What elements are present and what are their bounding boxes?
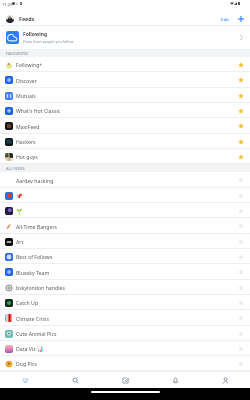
button[interactable]: Bluesky Team bbox=[0, 264, 250, 280]
button[interactable]: bskylondon handles bbox=[0, 280, 250, 295]
button[interactable]: Add feed bbox=[235, 13, 247, 25]
button[interactable]: Art bbox=[0, 234, 250, 249]
staticText: Bluesky Team bbox=[16, 269, 235, 276]
staticText: Following+ bbox=[16, 61, 235, 68]
staticText: Cute Animal Pics bbox=[16, 330, 235, 337]
button[interactable]: 🌱 bbox=[0, 203, 250, 218]
button[interactable]: Remove from favourites bbox=[235, 120, 247, 132]
button[interactable]: All-Time Bangers bbox=[0, 218, 250, 234]
staticText: 11:23 bbox=[2, 2, 13, 7]
button[interactable]: Remove from favourites bbox=[235, 105, 247, 117]
button[interactable]: Add to favourites bbox=[235, 251, 247, 263]
staticText: Posts from people you follow bbox=[23, 39, 74, 44]
button[interactable]: Hackers bbox=[0, 134, 250, 149]
button[interactable]: 📌 bbox=[0, 188, 250, 203]
staticText: Discover bbox=[16, 77, 235, 84]
staticText: Dog Pics bbox=[16, 360, 235, 367]
button[interactable]: Profile bbox=[200, 372, 250, 388]
staticText: Mutuals bbox=[16, 92, 235, 99]
button[interactable]: Add to favourites bbox=[235, 266, 247, 278]
button[interactable]: Cute Animal Pics bbox=[0, 326, 250, 341]
button[interactable]: Remove from favourites bbox=[235, 151, 247, 163]
button[interactable]: Add to favourites bbox=[235, 190, 247, 202]
button[interactable]: Add to favourites bbox=[235, 343, 247, 355]
button[interactable]: Best of Follows bbox=[0, 249, 250, 264]
staticText: MaxiFeed bbox=[16, 123, 235, 130]
staticText: All-Time Bangers bbox=[16, 223, 235, 230]
button[interactable]: Remove from favourites bbox=[235, 59, 247, 71]
staticText: Following bbox=[23, 31, 48, 38]
button[interactable]: Climate Crisis bbox=[0, 310, 250, 326]
button[interactable]: Add to favourites bbox=[235, 282, 247, 294]
button[interactable]: Open profile menu bbox=[6, 15, 14, 23]
button[interactable]: Add to favourites bbox=[235, 358, 247, 370]
button[interactable]: Add to favourites bbox=[235, 312, 247, 324]
staticText: bskylondon handles bbox=[16, 284, 235, 291]
button[interactable]: Add to favourites bbox=[235, 220, 247, 232]
button[interactable]: New post bbox=[100, 372, 150, 388]
button[interactable]: Hot guys bbox=[0, 149, 250, 164]
button[interactable]: Add to favourites bbox=[235, 328, 247, 340]
button[interactable]: Following+ bbox=[0, 57, 250, 72]
button[interactable]: Aardev hacking bbox=[0, 172, 250, 188]
button[interactable]: What's Hot Classic bbox=[0, 103, 250, 118]
button[interactable]: Add to favourites bbox=[235, 174, 247, 186]
button[interactable]: Mutuals bbox=[0, 88, 250, 103]
staticText: Edit bbox=[221, 16, 229, 22]
staticText: Aardev hacking bbox=[16, 177, 235, 184]
button[interactable]: Search bbox=[50, 372, 100, 388]
button[interactable]: Add to favourites bbox=[235, 297, 247, 309]
button[interactable]: Catch Up bbox=[0, 295, 250, 310]
button[interactable]: Following bbox=[0, 26, 250, 49]
staticText: Hot guys bbox=[16, 153, 235, 160]
button[interactable]: Edit bbox=[218, 12, 232, 26]
staticText: Climate Crisis bbox=[16, 315, 235, 322]
button[interactable]: Dog Pics bbox=[0, 356, 250, 371]
staticText: Data Viz 📊 bbox=[16, 345, 235, 352]
staticText: What's Hot Classic bbox=[16, 107, 235, 114]
button[interactable]: Discover bbox=[0, 72, 250, 88]
staticText: Hackers bbox=[16, 138, 235, 145]
button[interactable]: Notifications bbox=[150, 372, 200, 388]
button[interactable]: Add to favourites bbox=[235, 205, 247, 217]
button[interactable]: Remove from favourites bbox=[235, 90, 247, 102]
button[interactable]: Remove from favourites bbox=[235, 74, 247, 86]
staticText: 🌱 bbox=[16, 208, 235, 214]
button[interactable]: Home bbox=[0, 372, 50, 388]
staticText: Best of Follows bbox=[16, 253, 235, 260]
staticText: ALL FEEDS bbox=[6, 166, 25, 171]
staticText: Art bbox=[16, 238, 235, 245]
staticText: Catch Up bbox=[16, 299, 235, 306]
button[interactable]: Data Viz 📊 bbox=[0, 341, 250, 356]
staticText: FAVOURITES bbox=[6, 51, 29, 56]
button[interactable]: Remove from favourites bbox=[235, 136, 247, 148]
button[interactable]: Add to favourites bbox=[235, 236, 247, 248]
staticText: 📌 bbox=[16, 193, 235, 199]
button[interactable]: MaxiFeed bbox=[0, 118, 250, 134]
staticText: Feeds bbox=[19, 15, 35, 22]
